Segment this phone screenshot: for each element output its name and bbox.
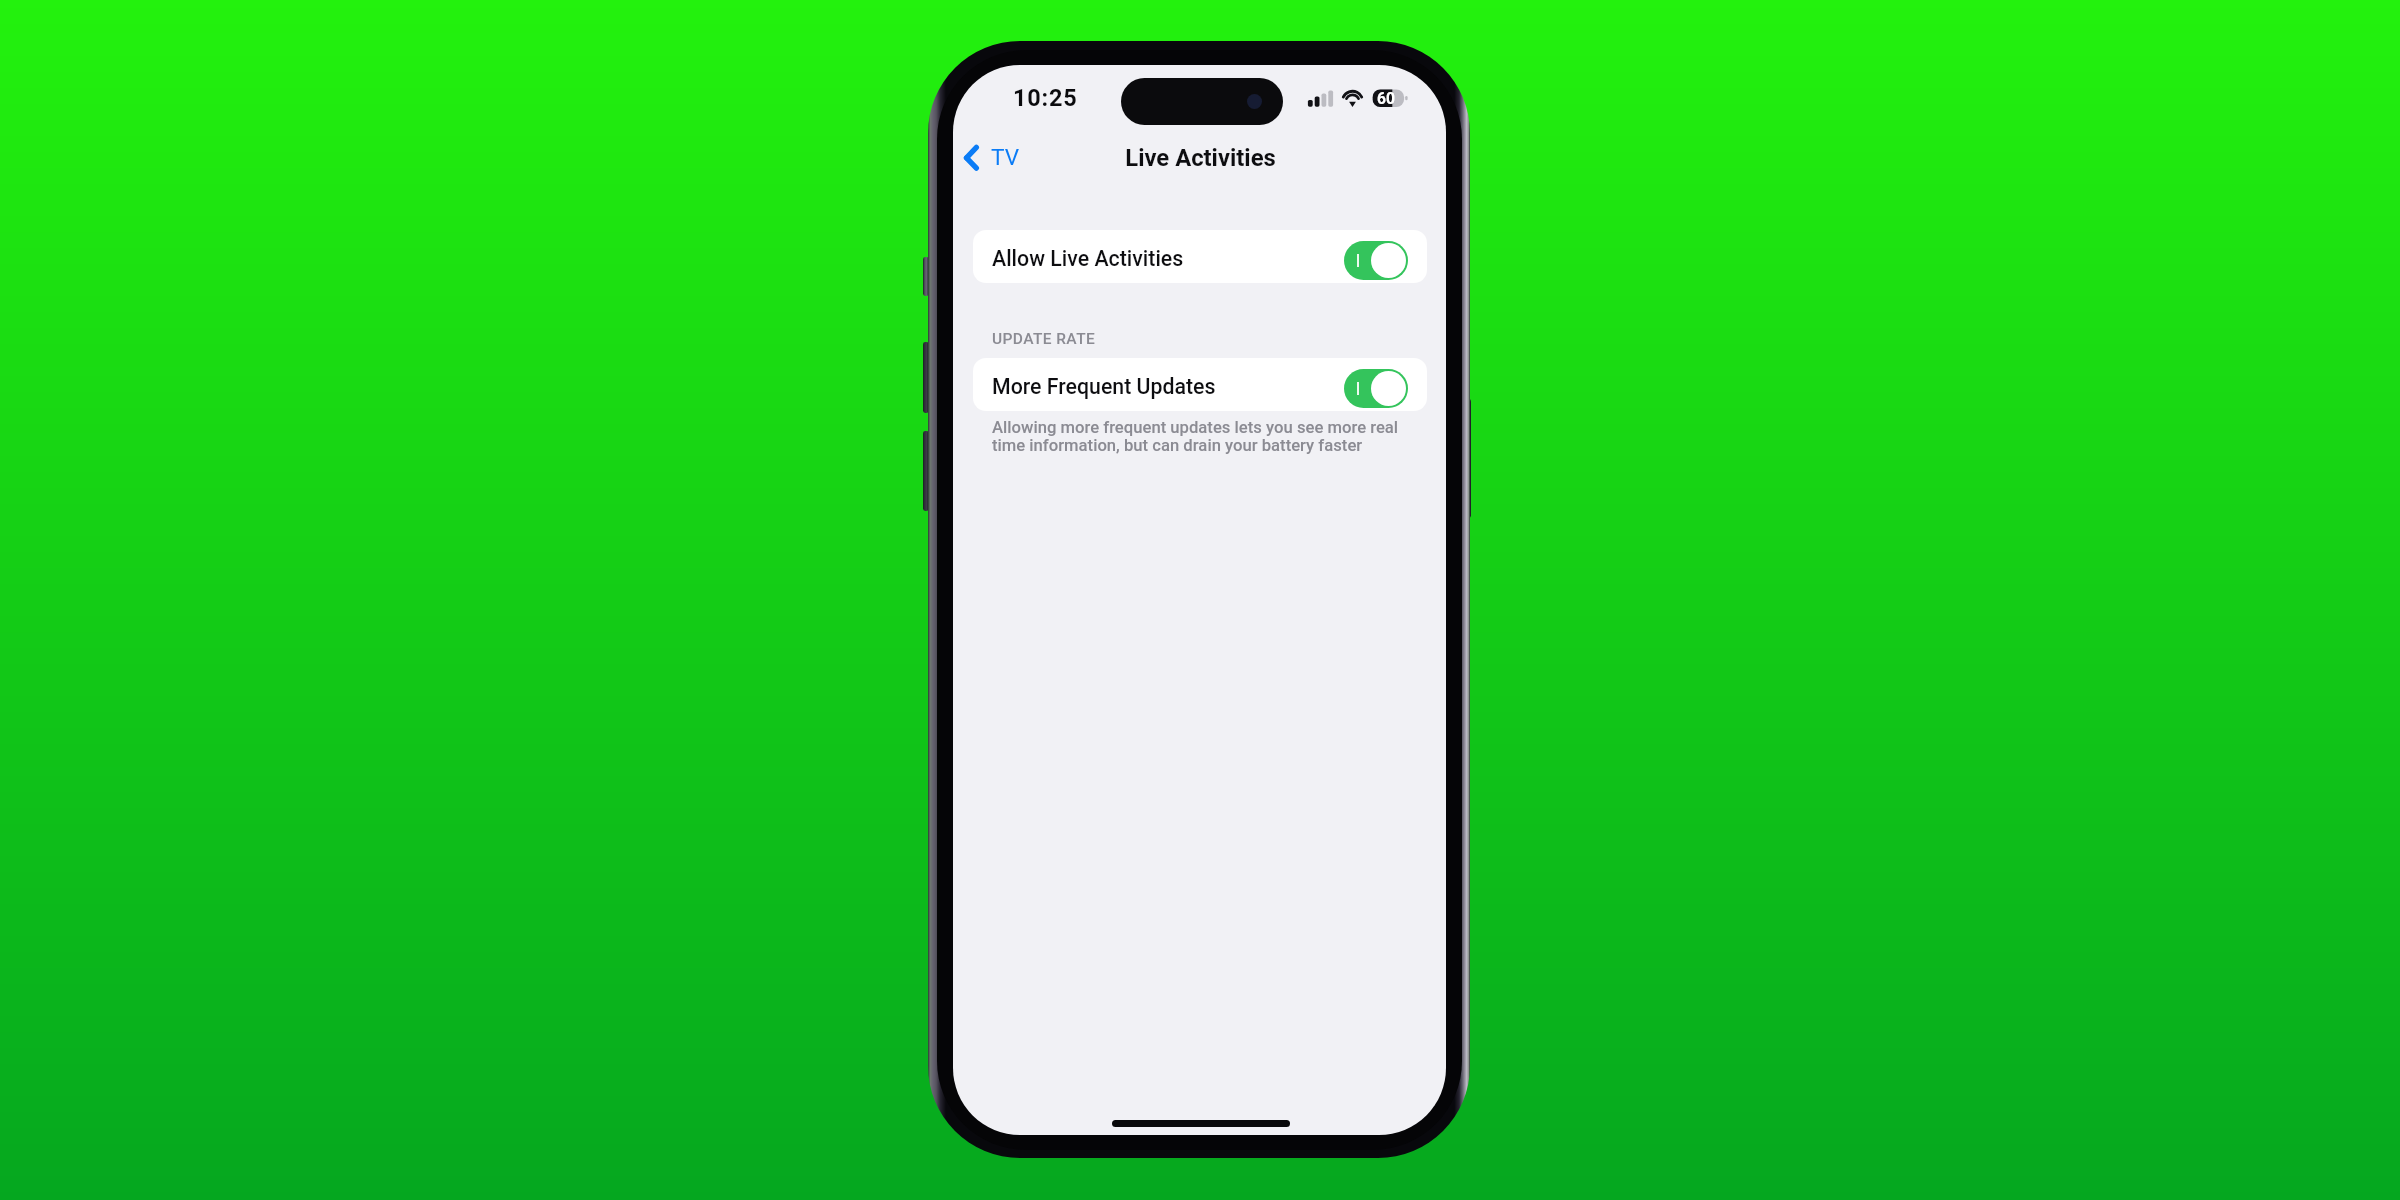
staticText: UPDATE RATE <box>992 330 1096 348</box>
staticText: Live Activities <box>954 144 1446 172</box>
staticText: 10:25 <box>1013 84 1078 112</box>
button[interactable]: More Frequent Updates <box>973 358 1427 411</box>
staticText: Allowing more frequent updates lets you … <box>992 418 1399 455</box>
button[interactable]: Toggle setting <box>1344 241 1408 280</box>
button[interactable]: Toggle setting <box>1344 369 1408 408</box>
button[interactable]: Back to TV <box>958 136 1034 178</box>
staticText: Allow Live Activities <box>992 246 1184 271</box>
staticText: More Frequent Updates <box>992 374 1216 399</box>
staticText: TV <box>991 144 1020 170</box>
staticText: 60 <box>1377 90 1396 108</box>
button[interactable]: Allow Live Activities <box>973 230 1427 283</box>
